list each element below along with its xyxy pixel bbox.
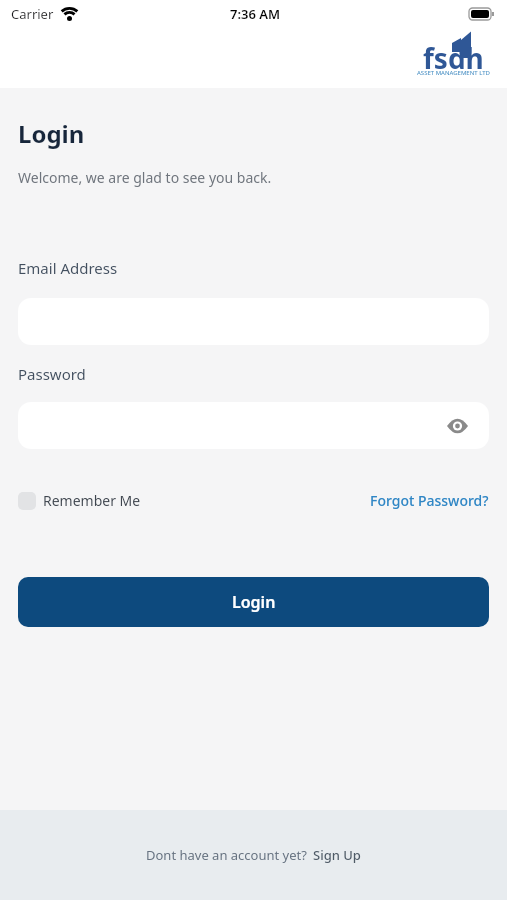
staticText: Dont have an account yet? bbox=[146, 846, 307, 864]
button[interactable]: Forgot Password? bbox=[370, 491, 489, 510]
staticText: Email Address bbox=[18, 258, 118, 278]
staticText: Welcome, we are glad to see you back. bbox=[18, 168, 272, 187]
button[interactable]: Dont have an account yet? bbox=[146, 846, 361, 864]
staticText: ASSET MANAGEMENT LTD bbox=[417, 69, 491, 77]
staticText: Sign Up bbox=[313, 846, 361, 864]
staticText: Login bbox=[232, 591, 276, 613]
staticText: Carrier bbox=[11, 5, 54, 23]
staticText: fsdh bbox=[423, 39, 484, 77]
button[interactable] bbox=[18, 402, 489, 449]
button[interactable]: Remember Me bbox=[18, 491, 141, 510]
staticText: Login bbox=[18, 117, 85, 150]
staticText: 7:36 AM bbox=[230, 5, 281, 23]
staticText: Password bbox=[18, 364, 86, 384]
button[interactable]: Login bbox=[18, 577, 489, 627]
staticText: Remember Me bbox=[43, 491, 141, 510]
